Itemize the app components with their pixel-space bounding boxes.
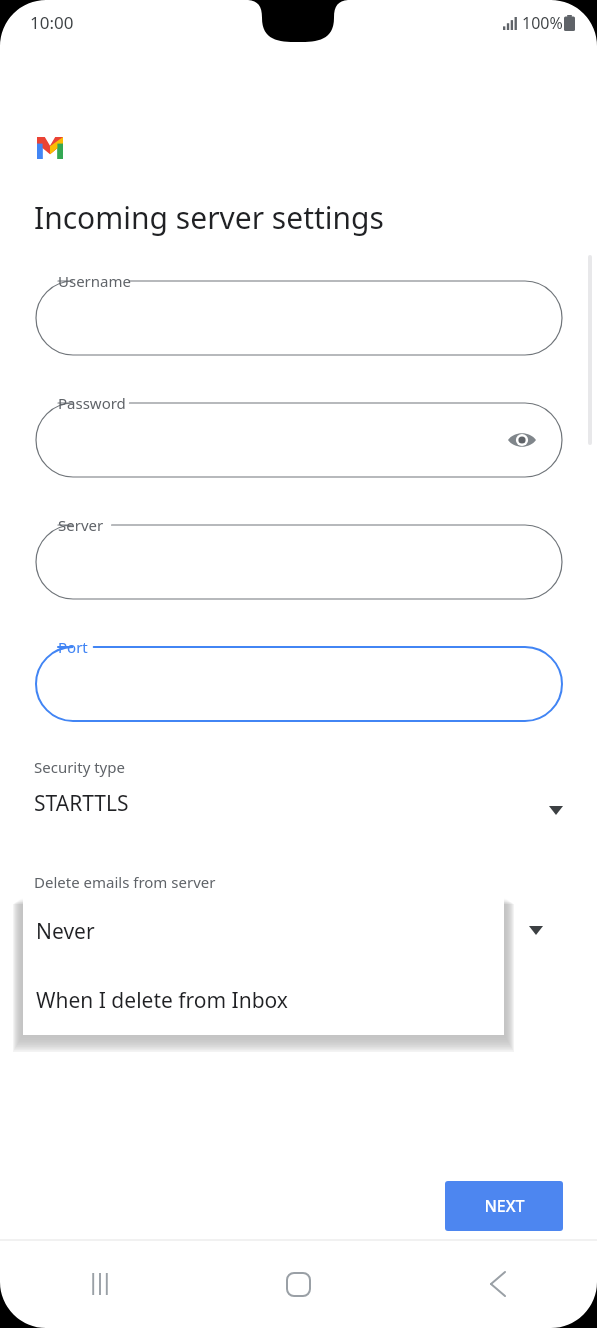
button[interactable]: Home [199,1240,398,1328]
staticText: Username [58,271,131,291]
staticText: Server [58,515,104,535]
staticText: 10:00 [30,11,74,34]
button[interactable]: Port [36,647,562,721]
button[interactable]: Server [36,525,562,599]
button[interactable]: Never [23,897,504,966]
button[interactable]: Password [36,403,562,477]
staticText: STARTTLS [34,789,129,818]
button[interactable]: Show password [500,418,544,462]
button[interactable]: Username [36,281,562,355]
staticText: Incoming server settings [34,197,384,238]
button[interactable]: Recents [0,1240,199,1328]
staticText: Password [58,393,126,413]
staticText: Port [58,637,88,657]
button[interactable]: Security type [34,757,563,847]
staticText: 100% [522,12,563,34]
staticText: Security type [34,757,125,777]
button[interactable]: Delete emails from server dropdown [512,908,560,952]
button[interactable]: NEXT [445,1181,563,1231]
staticText: Delete emails from server [34,872,216,892]
staticText: Never [36,917,95,946]
staticText: When I delete from Inbox [36,986,288,1015]
staticText: NEXT [484,1195,525,1217]
button[interactable]: When I delete from Inbox [23,966,504,1035]
button[interactable]: Back [398,1240,597,1328]
